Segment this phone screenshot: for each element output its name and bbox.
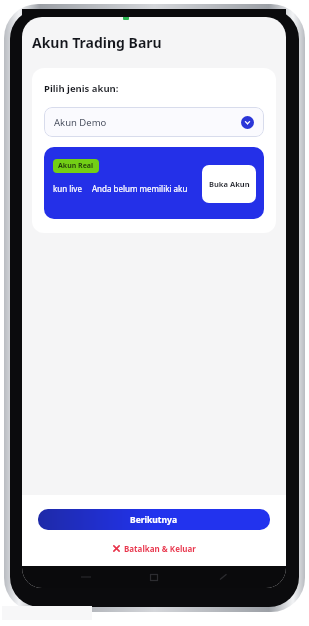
button[interactable]: Batalkan & Keluar xyxy=(107,541,202,556)
staticText: Anda belum memiliki aku xyxy=(92,183,188,194)
other: Recents xyxy=(81,572,91,582)
other: Expand xyxy=(241,116,254,129)
other: Back xyxy=(218,572,228,582)
other: Home xyxy=(149,572,159,582)
staticText: Akun Trading Baru xyxy=(32,33,162,52)
button[interactable]: Akun Real xyxy=(44,147,264,219)
button[interactable]: Akun Demo xyxy=(44,107,264,137)
staticText: Akun Real xyxy=(58,161,94,171)
staticText: Buka Akun xyxy=(209,179,250,189)
staticText: Batalkan & Keluar xyxy=(124,543,196,554)
button[interactable]: Buka Akun xyxy=(202,165,256,203)
staticText: Pilih jenis akun: xyxy=(44,82,119,95)
staticText: Berikutnya xyxy=(130,514,178,526)
staticText: kun live xyxy=(53,183,82,194)
staticText: Akun Demo xyxy=(54,116,241,129)
button[interactable]: Berikutnya xyxy=(38,509,270,530)
